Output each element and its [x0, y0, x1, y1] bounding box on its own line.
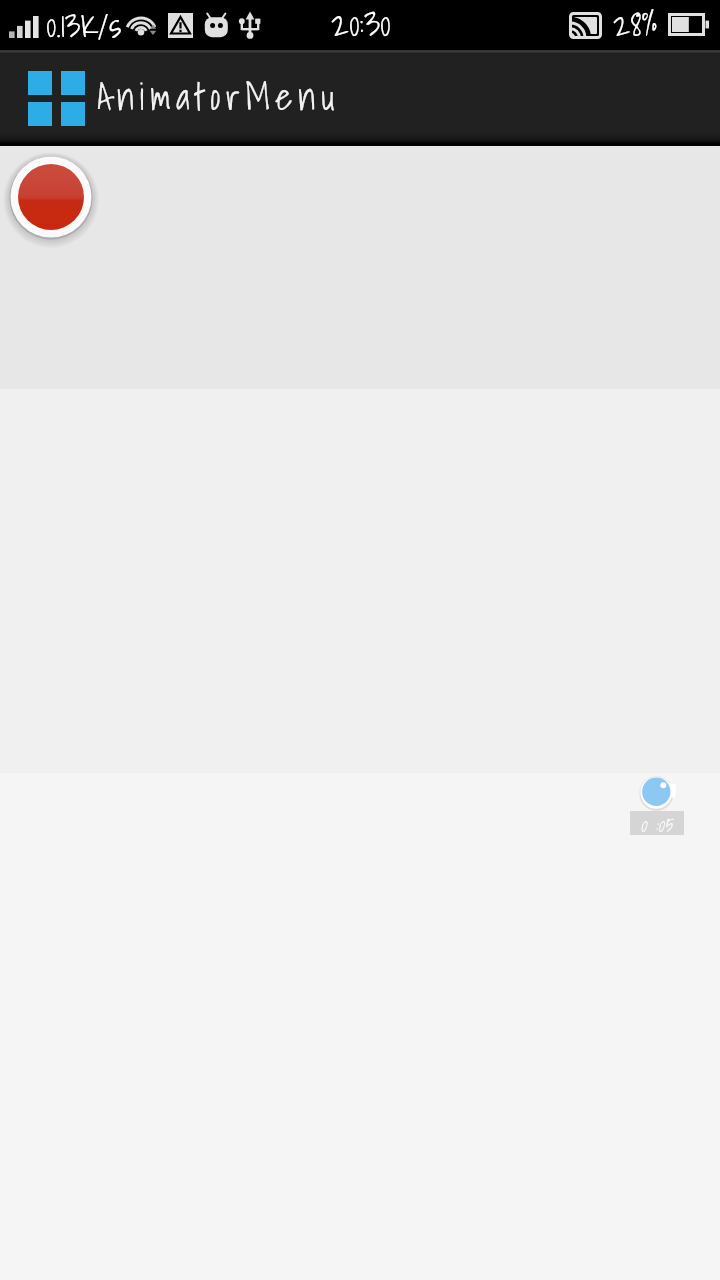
- staticText: 0.13K/s: [46, 0, 122, 47]
- staticText: 28%: [613, 0, 658, 46]
- staticText: 0 :05: [640, 809, 674, 833]
- staticText: 20:30: [331, 0, 391, 45]
- button[interactable]: Record: [9, 155, 93, 239]
- staticText: AnimatorMenu: [97, 68, 341, 126]
- button[interactable]: Menu: [20, 63, 93, 133]
- button[interactable]: Timer 0:05: [630, 772, 686, 836]
